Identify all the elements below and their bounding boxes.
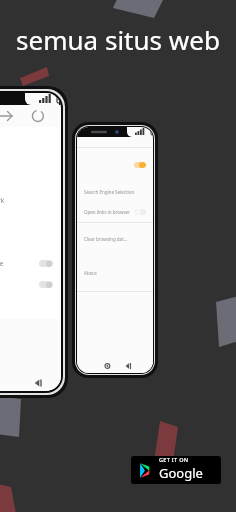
button[interactable]	[77, 148, 153, 182]
button[interactable]: About	[77, 255, 153, 291]
button[interactable]: Desktop Mode	[0, 253, 61, 274]
staticText: Search Engine Selection	[84, 189, 135, 195]
staticText: Desktop Mode	[0, 259, 4, 268]
staticText: Add Bookmark	[0, 196, 5, 205]
button[interactable]: Clear browsing dat…	[77, 223, 153, 255]
staticText: Open links in browser	[84, 209, 130, 215]
staticText: semua situs web	[0, 22, 236, 57]
button[interactable]: Add Bookmark	[0, 190, 61, 211]
staticText: Google Play	[159, 464, 215, 484]
button[interactable]: Open links in browser	[77, 202, 153, 222]
button[interactable]: Get it on Google Play	[131, 456, 221, 484]
button[interactable]: Search Engine Selection	[77, 182, 153, 202]
button[interactable]: Passcode	[0, 274, 61, 295]
staticText: Clear browsing dat…	[84, 236, 128, 242]
staticText: GET IT ON	[159, 456, 189, 463]
staticText: About	[84, 270, 97, 276]
